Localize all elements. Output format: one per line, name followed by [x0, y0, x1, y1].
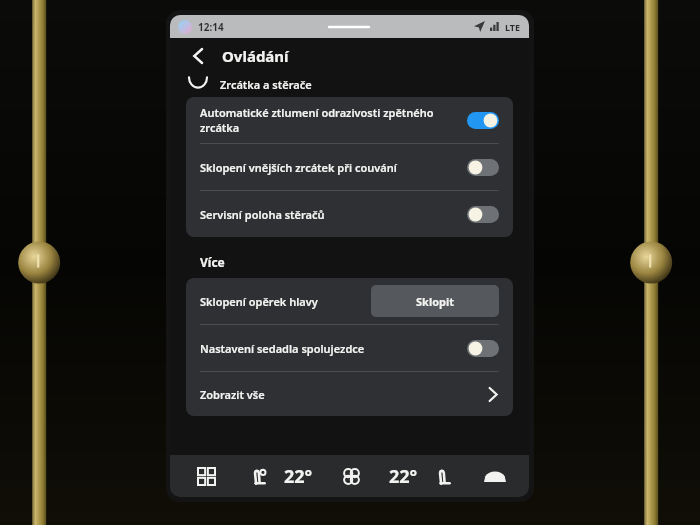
staticText: Nastavení sedadla spolujezdce: [200, 341, 467, 356]
button[interactable]: 22°: [385, 464, 422, 489]
button[interactable]: Zobrazit vše: [186, 372, 513, 416]
button[interactable]: Driver seat heating: [240, 458, 276, 494]
staticText: Ovládání: [222, 46, 289, 66]
button[interactable]: Fan: [334, 459, 368, 493]
staticText: Automatické ztlumení odrazivosti zpětnéh…: [200, 105, 467, 135]
staticText: LTE: [505, 21, 521, 33]
staticText: Zobrazit vše: [200, 387, 486, 402]
staticText: Servisní poloha stěračů: [200, 207, 467, 222]
staticText: Sklopení opěrek hlavy: [200, 294, 371, 309]
staticText: Sklopit: [416, 294, 455, 309]
button[interactable]: Sklopení vnějších zrcátek při couvání: [186, 144, 513, 190]
staticText: 22°: [284, 464, 313, 489]
staticText: Více: [200, 254, 225, 270]
button[interactable]: Back: [184, 41, 214, 71]
staticText: 22°: [389, 464, 418, 489]
button[interactable]: Passenger seat: [426, 459, 460, 493]
button[interactable]: Sklopit: [371, 285, 499, 317]
button[interactable]: Zrcátka a stěrače: [170, 77, 529, 90]
button[interactable]: 22°: [280, 464, 317, 489]
button[interactable]: Nastavení sedadla spolujezdce: [186, 325, 513, 371]
staticText: 12:14: [198, 20, 224, 34]
staticText: Sklopení vnějších zrcátek při couvání: [200, 160, 467, 175]
button[interactable]: Automatické ztlumení odrazivosti zpětnéh…: [186, 97, 513, 143]
staticText: Zrcátka a stěrače: [220, 77, 312, 90]
button[interactable]: Servisní poloha stěračů: [186, 191, 513, 237]
button[interactable]: Apps: [186, 456, 226, 496]
button[interactable]: Car: [477, 458, 513, 494]
